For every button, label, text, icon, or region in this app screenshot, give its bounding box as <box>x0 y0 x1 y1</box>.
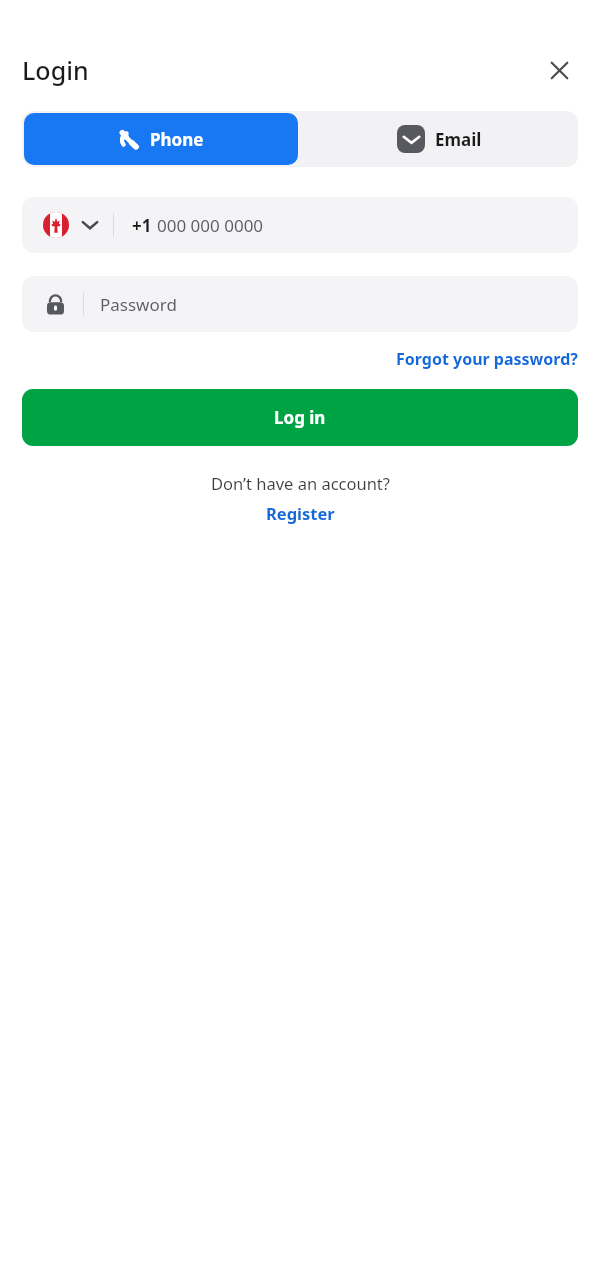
staticText: Log in <box>274 406 326 429</box>
staticText: Don’t have an account? <box>211 472 390 494</box>
button[interactable]: Email <box>300 111 578 167</box>
button[interactable]: Register <box>266 502 335 524</box>
staticText: Password <box>100 293 177 316</box>
button[interactable]: Phone <box>24 113 298 165</box>
button[interactable]: Log in <box>22 389 578 446</box>
staticText: Email <box>435 128 482 151</box>
staticText: Phone <box>150 128 204 151</box>
staticText: Register <box>266 502 335 524</box>
button[interactable]: +1 <box>22 197 578 253</box>
staticText: 000 000 0000 <box>157 214 264 237</box>
button[interactable]: Close <box>544 55 574 85</box>
button[interactable]: Password <box>22 276 578 332</box>
staticText: Login <box>22 53 89 87</box>
staticText: Forgot your password? <box>396 348 578 370</box>
button[interactable]: Forgot your password? <box>396 344 578 374</box>
staticText: +1 <box>132 214 152 237</box>
